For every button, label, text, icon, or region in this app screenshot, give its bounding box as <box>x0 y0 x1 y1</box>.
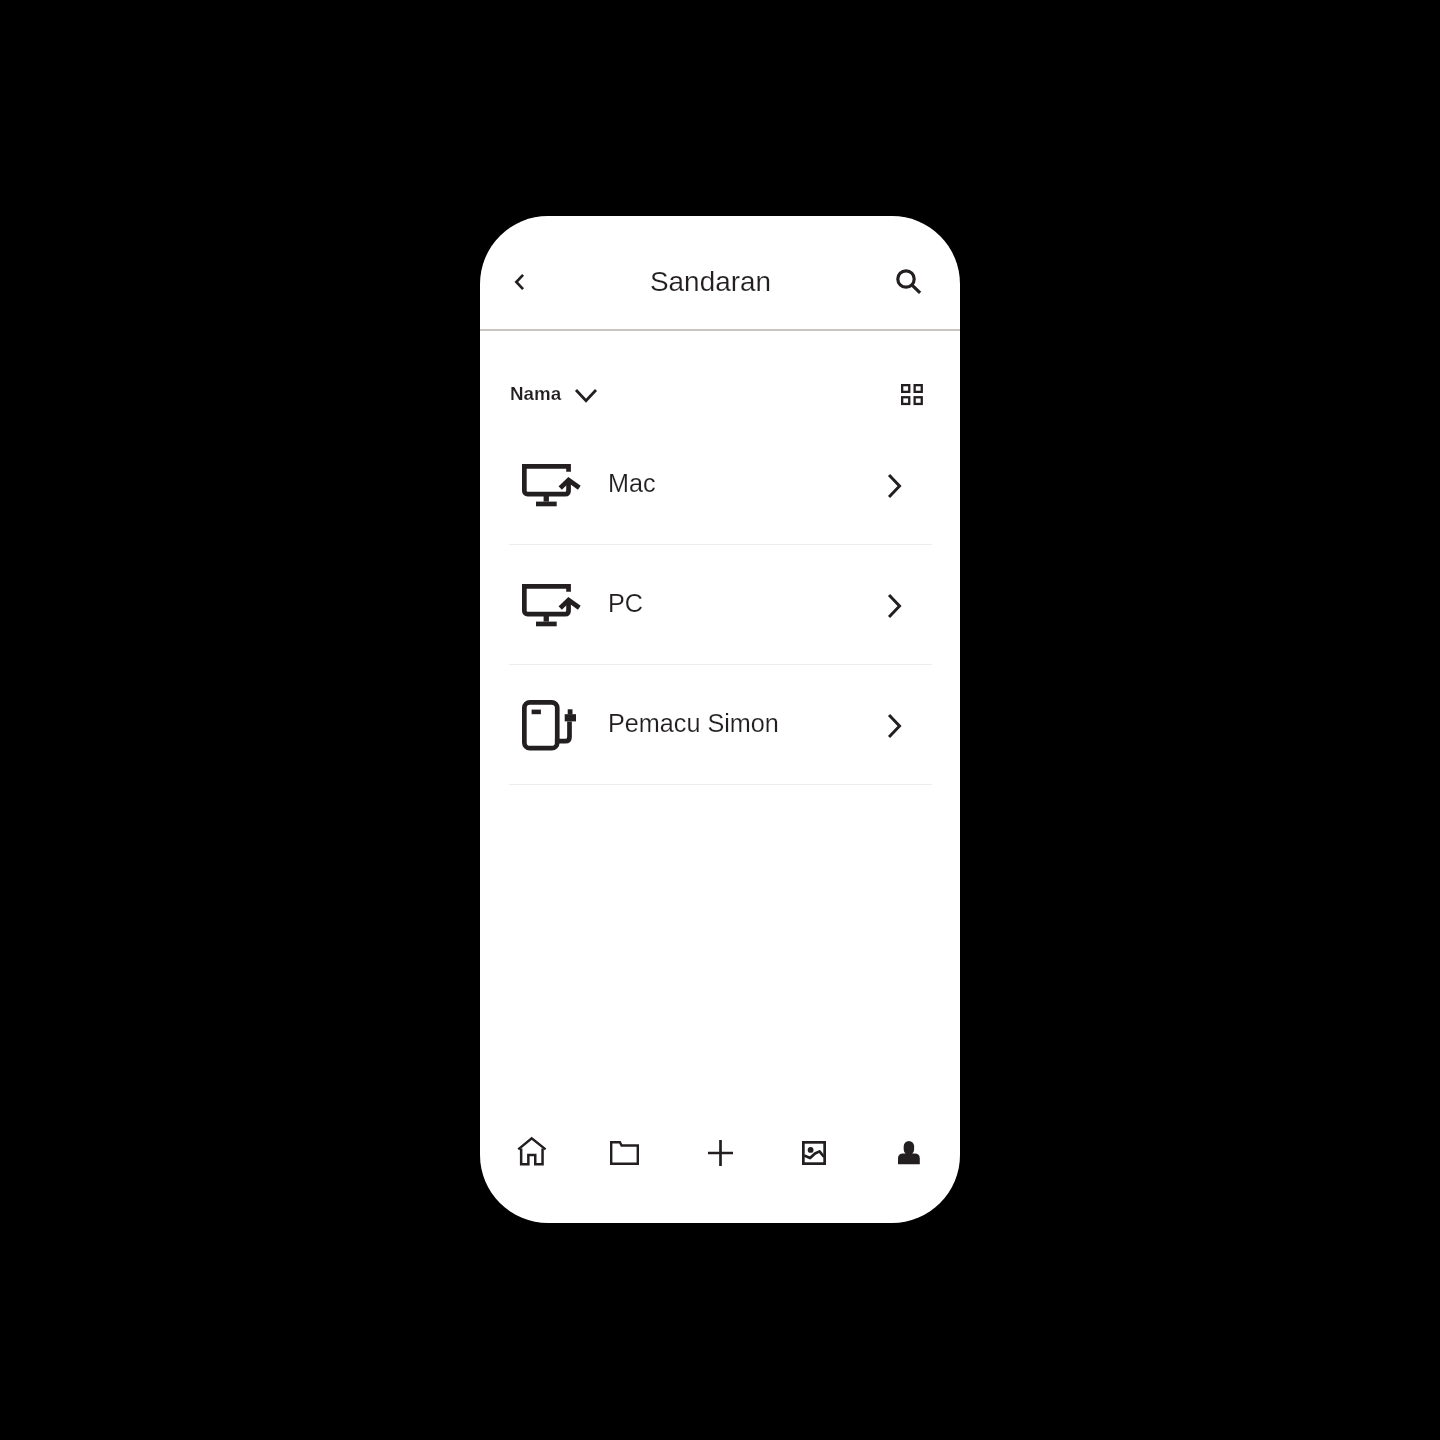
button[interactable]: PC <box>480 545 960 664</box>
button[interactable]: Pemacu Simon <box>480 665 960 784</box>
button[interactable]: Mac <box>480 425 960 544</box>
button[interactable]: Home <box>484 1113 579 1223</box>
staticText: PC <box>608 589 643 617</box>
button[interactable]: Folders <box>578 1113 673 1223</box>
staticText: Nama <box>510 383 562 404</box>
staticText: Mac <box>608 469 656 497</box>
button[interactable]: Photos <box>767 1113 862 1223</box>
button[interactable]: Back <box>499 262 539 302</box>
staticText: Pemacu Simon <box>608 709 779 737</box>
staticText: Sandaran <box>650 266 771 297</box>
button[interactable]: Profile <box>862 1113 957 1223</box>
button[interactable]: Grid view <box>892 374 932 414</box>
button[interactable]: Add <box>673 1113 768 1223</box>
button[interactable]: Nama <box>503 379 605 412</box>
button[interactable]: Search <box>886 261 926 301</box>
